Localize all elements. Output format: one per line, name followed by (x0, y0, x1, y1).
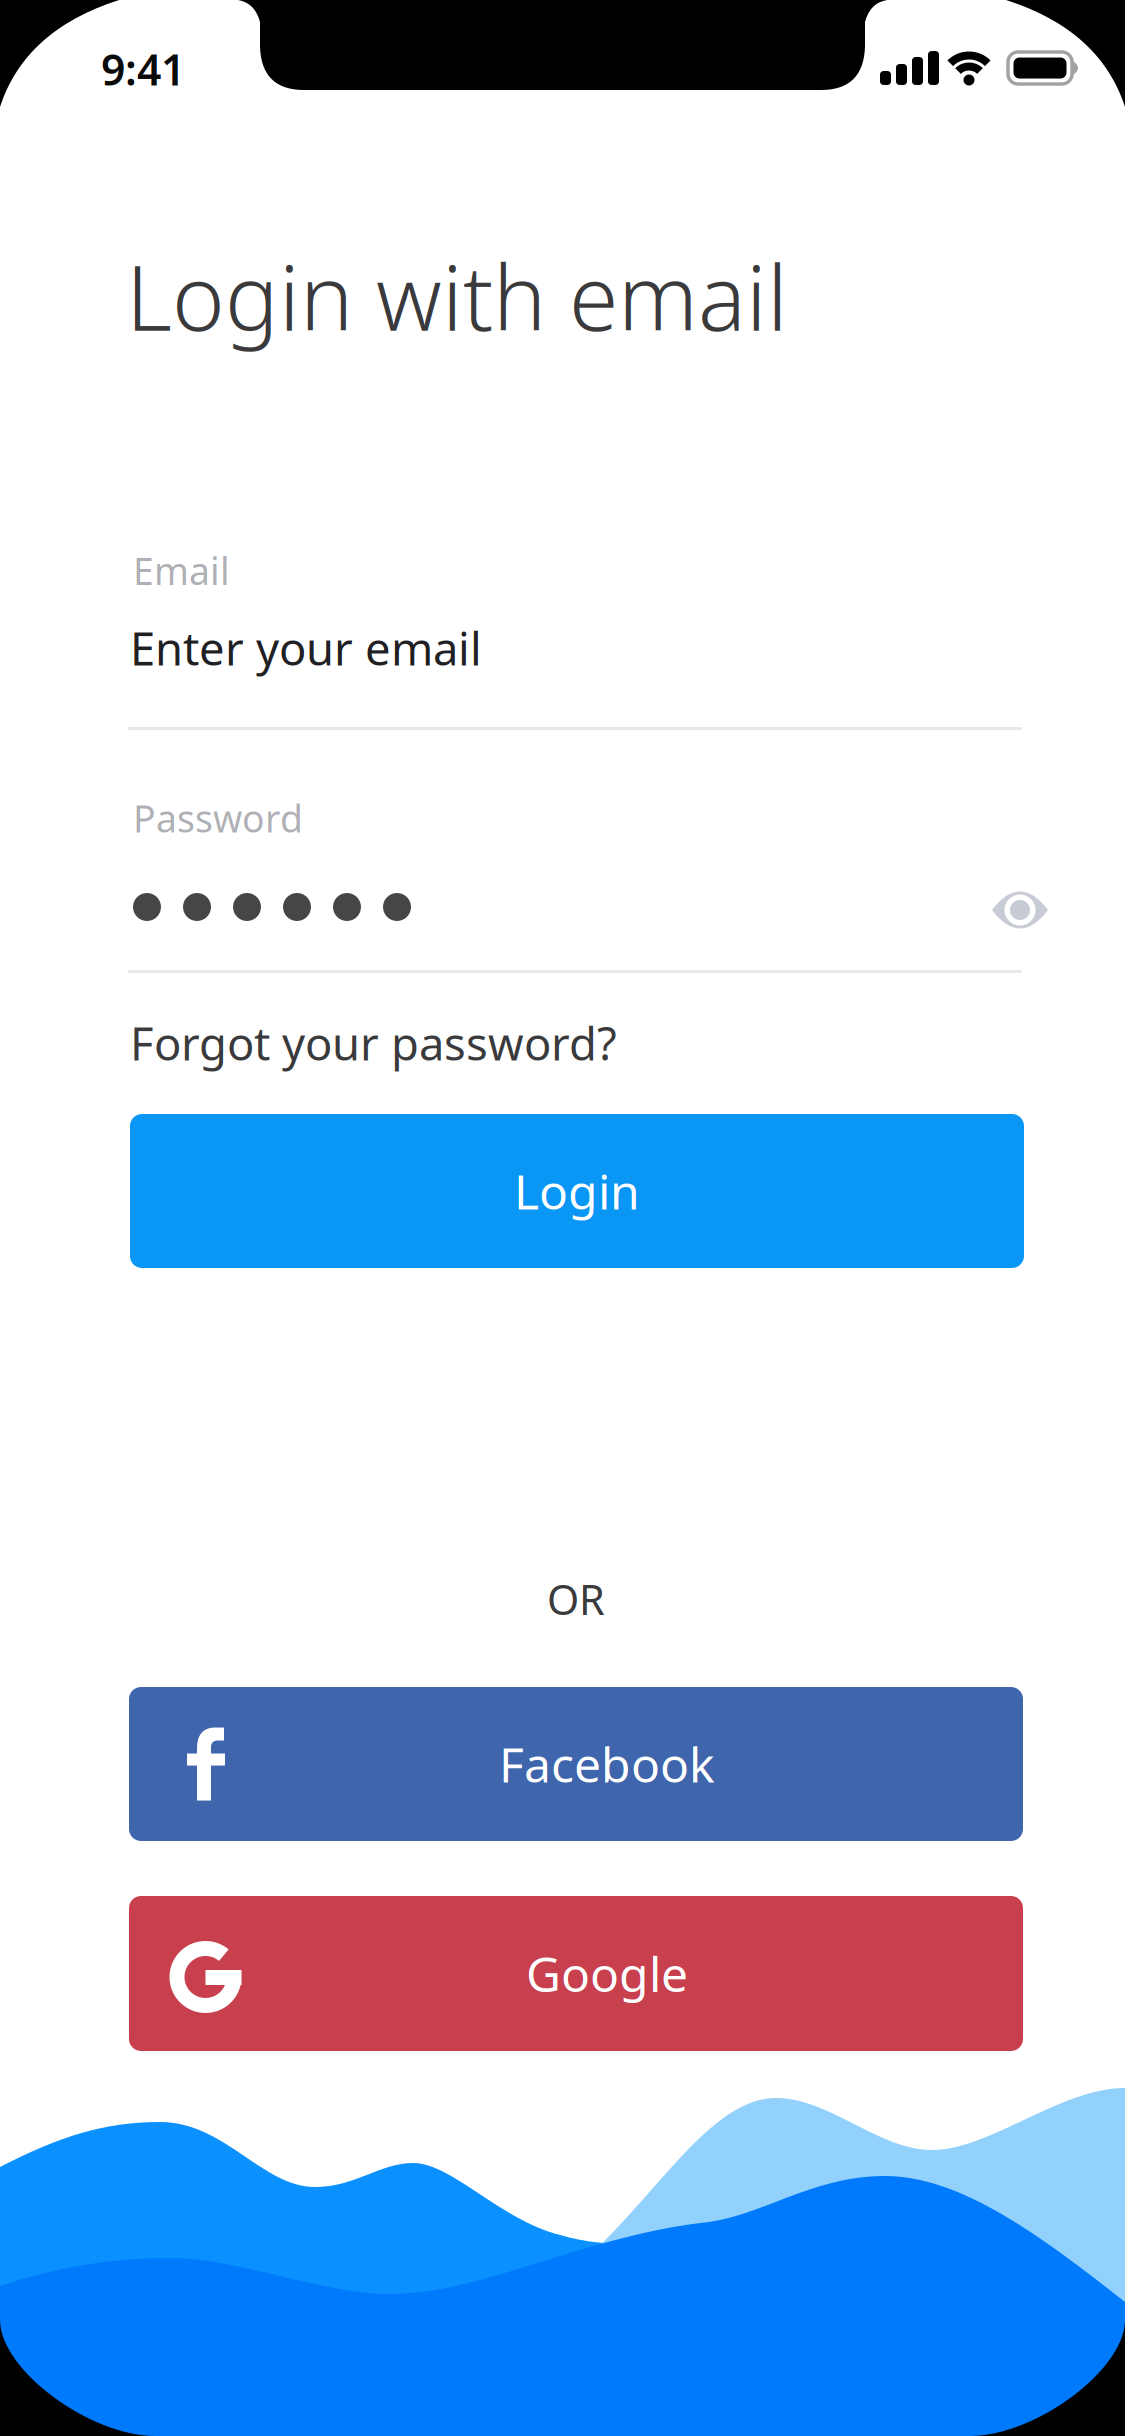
staticText: Forgot your password? (130, 1013, 617, 1073)
staticText: Password (133, 793, 303, 843)
staticText: Email (133, 546, 230, 595)
button[interactable]: Password (128, 774, 1022, 972)
staticText: Enter your email (130, 618, 482, 678)
button[interactable]: Email (128, 528, 1022, 729)
button[interactable]: Facebook (129, 1687, 1023, 1841)
staticText: OR (547, 1572, 605, 1626)
button[interactable]: Forgot your password? (130, 1013, 1024, 1073)
button[interactable] (990, 888, 1050, 932)
staticText: Login with email (126, 237, 788, 355)
staticText: Google (526, 1942, 688, 2005)
staticText: Login (514, 1159, 640, 1223)
button[interactable]: Google (129, 1896, 1023, 2051)
button[interactable]: Login (130, 1114, 1024, 1268)
staticText: Facebook (499, 1732, 715, 1796)
staticText: 9:41 (101, 41, 185, 97)
